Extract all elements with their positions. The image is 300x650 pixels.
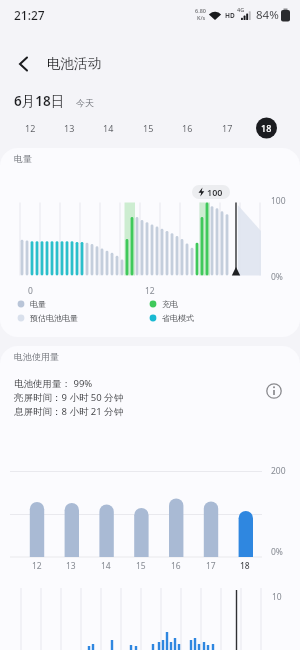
staticText: 16 [182,122,193,134]
staticText: 15 [136,560,146,572]
staticText: 12 [145,285,155,297]
button[interactable]: 15 [136,116,160,140]
staticText: 13 [64,122,75,134]
staticText: 84% [256,7,279,23]
staticText: 16 [171,560,181,572]
staticText: 0 [28,285,33,297]
staticText: 电池活动 [47,55,101,72]
button[interactable]: 14 [96,116,120,140]
button[interactable]: 17 [215,116,239,140]
button[interactable]: 18 [254,116,278,140]
staticText: 14 [103,122,114,134]
staticText: 14 [101,560,111,572]
staticText: 省电模式 [162,313,194,323]
staticText: 电池使用量： 99% [14,377,93,390]
staticText: 200 [271,465,286,477]
staticText: 15 [143,122,154,134]
staticText: K/s [197,14,206,21]
staticText: 6.80 [195,7,206,14]
staticText: 亮屏时间：9 小时 50 分钟 [14,391,124,404]
staticText: 12 [25,122,36,134]
button[interactable]: 16 [175,116,199,140]
staticText: 预估电池电量 [30,313,78,323]
staticText: 13 [66,560,76,572]
staticText: 12 [32,560,42,572]
staticText: 4G [237,6,245,13]
staticText: 电池使用量 [14,351,59,362]
staticText: 10 [272,591,282,603]
staticText: 0% [271,546,283,558]
button[interactable]: 13 [57,116,81,140]
staticText: 18 [240,560,250,572]
button[interactable] [263,380,285,402]
staticText: 今天 [76,97,94,108]
staticText: 17 [222,122,233,134]
staticText: 息屏时间：8 小时 21 分钟 [14,405,124,418]
staticText: 充电 [162,299,178,309]
button[interactable] [10,50,36,74]
staticText: 电量 [30,299,46,309]
button[interactable]: 12 [18,116,42,140]
staticText: 100 [271,195,286,207]
staticText: 电量 [14,153,32,164]
staticText: HD [225,11,235,20]
staticText: 6月18日 [14,92,65,110]
staticText: 0% [271,271,283,283]
staticText: 21:27 [14,7,45,23]
staticText: 18 [261,122,272,134]
staticText: 100 [207,186,223,198]
staticText: 17 [206,560,216,572]
